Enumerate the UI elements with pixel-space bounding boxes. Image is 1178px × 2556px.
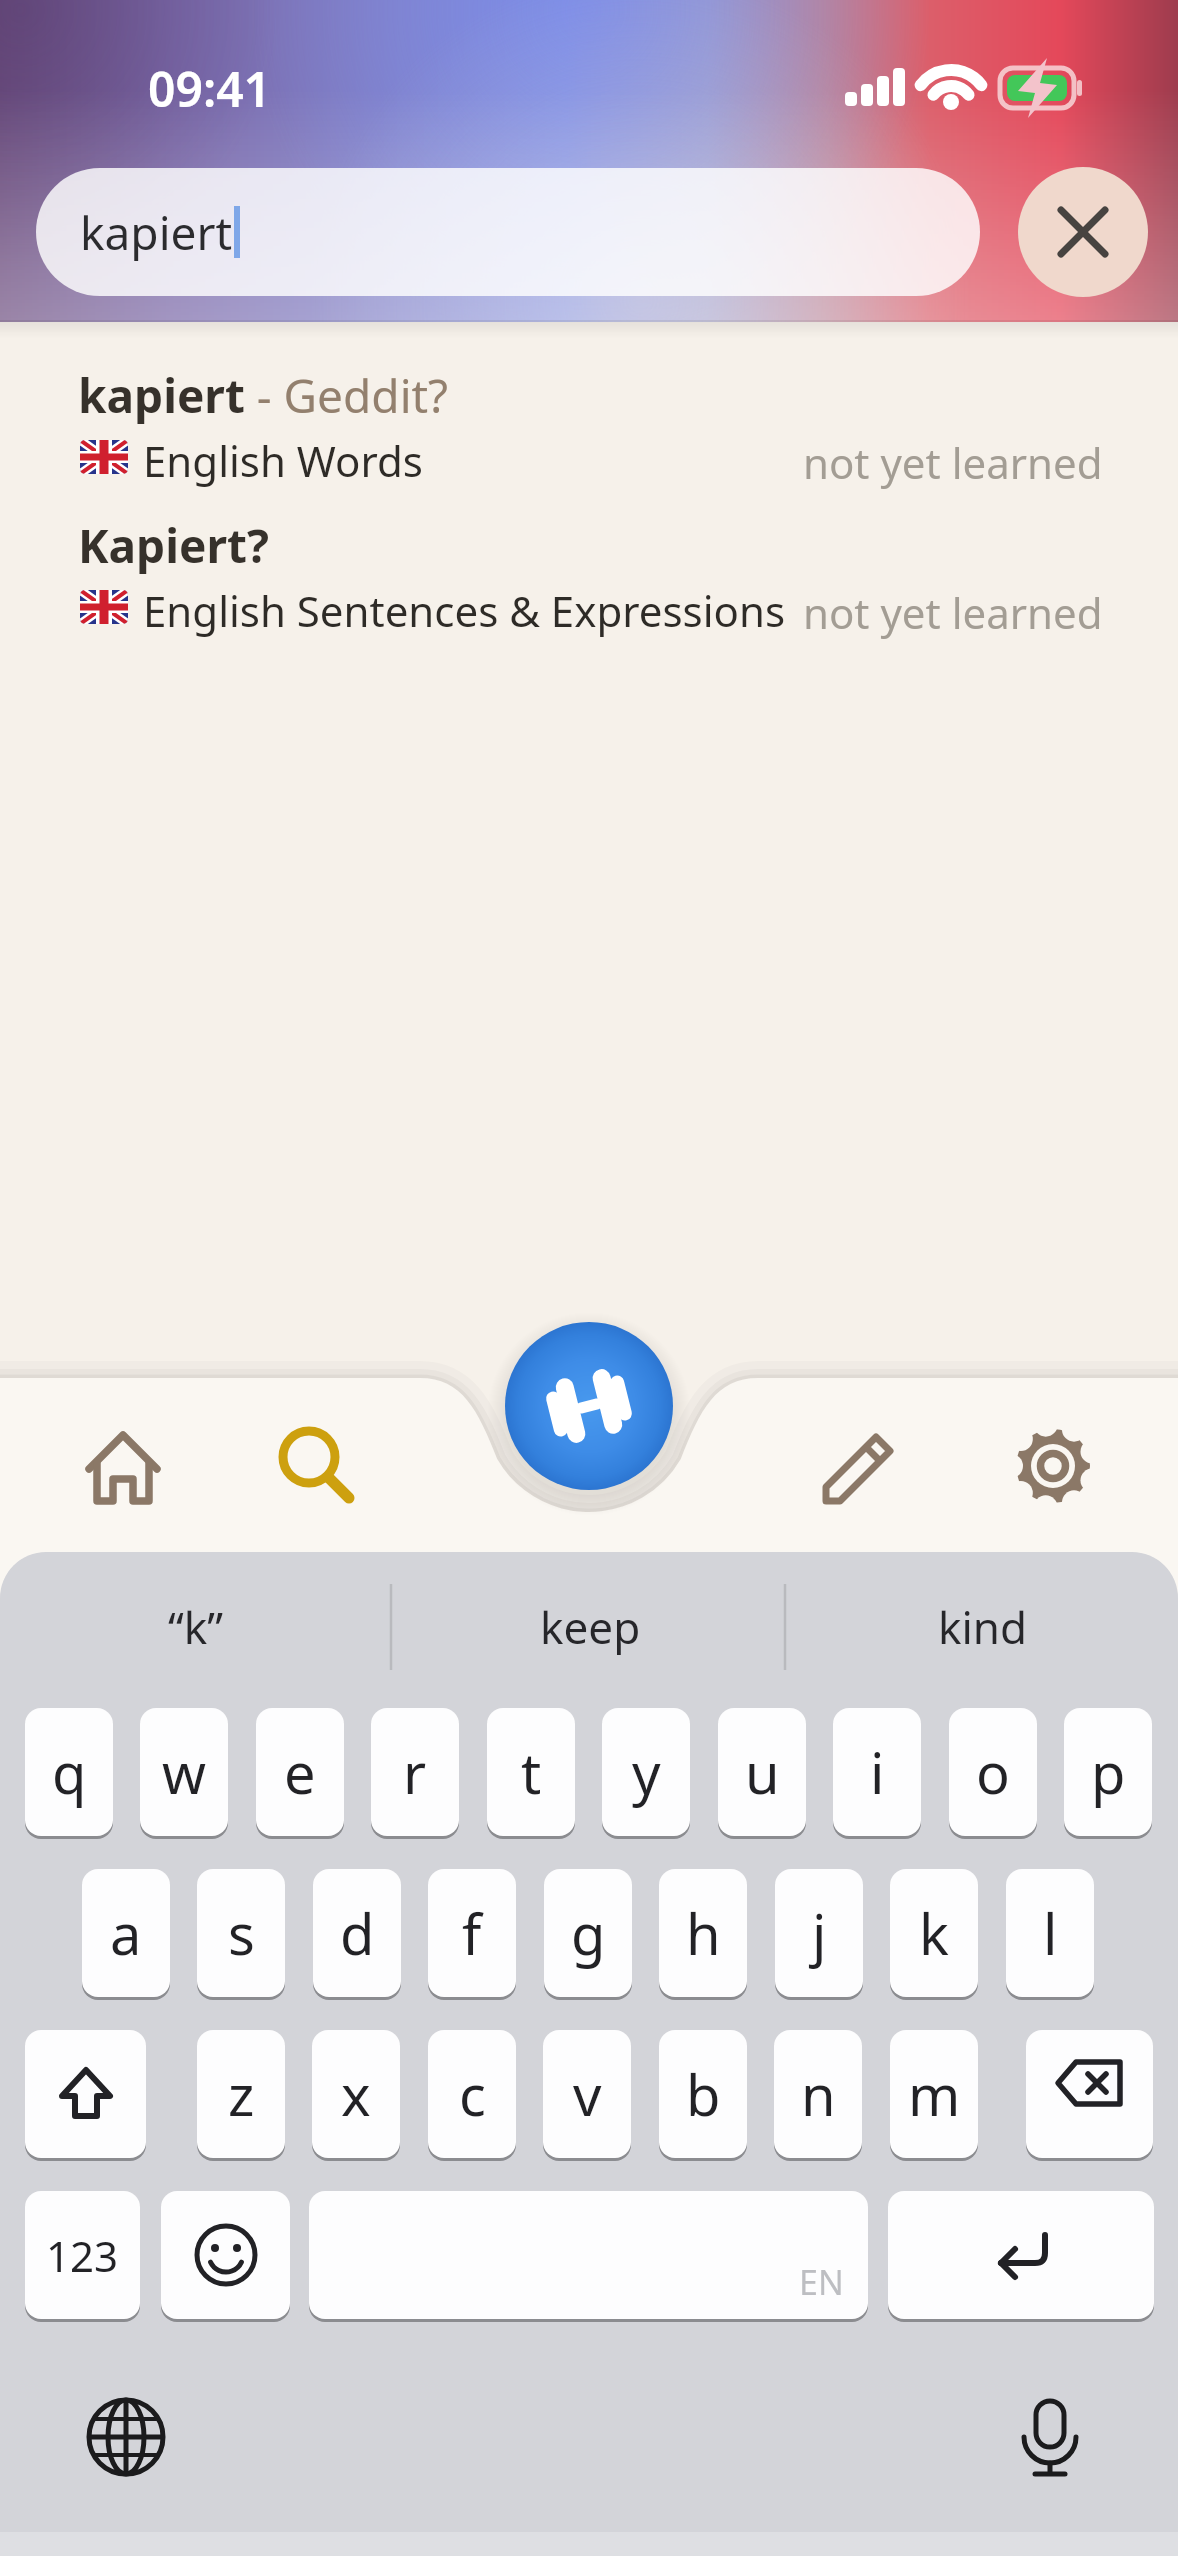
button[interactable]	[888, 2191, 1154, 2322]
staticText: Kapiert?	[78, 514, 269, 577]
button[interactable]: keep	[440, 1597, 740, 1657]
button[interactable]: “k”	[46, 1597, 346, 1657]
staticText: f	[462, 1895, 482, 1971]
staticText: w	[162, 1734, 207, 1810]
button[interactable]	[79, 1423, 167, 1511]
button[interactable]: p	[1064, 1708, 1152, 1839]
button[interactable]: g	[544, 1869, 632, 2000]
staticText: j	[812, 1895, 827, 1971]
staticText: kind	[938, 1597, 1028, 1657]
button[interactable]: s	[197, 1869, 285, 2000]
staticText: d	[340, 1895, 375, 1971]
staticText: m	[908, 2056, 961, 2132]
staticText: p	[1091, 1734, 1126, 1810]
button[interactable]: Kapiert?	[36, 504, 1142, 644]
staticText: s	[228, 1895, 255, 1971]
button[interactable]: i	[833, 1708, 921, 1839]
button[interactable]: l	[1006, 1869, 1094, 2000]
button[interactable]	[1018, 167, 1148, 297]
button[interactable]	[25, 2030, 146, 2161]
staticText: k	[919, 1895, 949, 1971]
staticText: o	[976, 1734, 1010, 1810]
staticText: English Sentences & Expressions	[143, 582, 786, 639]
button[interactable]: m	[890, 2030, 978, 2161]
button[interactable]: b	[659, 2030, 747, 2161]
button[interactable]	[86, 2397, 166, 2477]
staticText: English Words	[143, 432, 423, 489]
staticText: kapiert - Geddit?	[78, 364, 449, 427]
button[interactable]: u	[718, 1708, 806, 1839]
button[interactable]: z	[197, 2030, 285, 2161]
button[interactable]: n	[774, 2030, 862, 2161]
button[interactable]: q	[25, 1708, 113, 1839]
staticText: t	[521, 1734, 542, 1810]
staticText: 09:41	[148, 56, 272, 121]
button[interactable]: 123	[25, 2191, 140, 2322]
staticText: g	[571, 1895, 606, 1971]
button[interactable]: k	[890, 1869, 978, 2000]
button[interactable]	[1010, 2397, 1090, 2477]
staticText: z	[228, 2056, 255, 2132]
staticText: EN	[799, 2259, 844, 2305]
button[interactable]	[1026, 2030, 1153, 2161]
staticText: “k”	[168, 1597, 224, 1657]
staticText: not yet learned	[803, 584, 1103, 641]
staticText: i	[870, 1734, 885, 1810]
staticText: u	[745, 1734, 780, 1810]
staticText: y	[632, 1734, 661, 1810]
staticText: l	[1043, 1895, 1058, 1971]
staticText: x	[341, 2056, 371, 2132]
button[interactable]: d	[313, 1869, 401, 2000]
button[interactable]	[505, 1322, 673, 1490]
button[interactable]: x	[312, 2030, 400, 2161]
button[interactable]	[1009, 1422, 1097, 1510]
button[interactable]: v	[543, 2030, 631, 2161]
button[interactable]: w	[140, 1708, 228, 1839]
button[interactable]: c	[428, 2030, 516, 2161]
button[interactable]: e	[256, 1708, 344, 1839]
staticText: n	[801, 2056, 836, 2132]
staticText: b	[686, 2056, 721, 2132]
button[interactable]	[271, 1423, 359, 1511]
button[interactable]: EN	[309, 2191, 868, 2322]
button[interactable]: j	[775, 1869, 863, 2000]
button[interactable]	[161, 2191, 290, 2322]
staticText: a	[110, 1895, 142, 1971]
button[interactable]: h	[659, 1869, 747, 2000]
button[interactable]: a	[82, 1869, 170, 2000]
button[interactable]: t	[487, 1708, 575, 1839]
button[interactable]: y	[602, 1708, 690, 1839]
button[interactable]: kapiert - Geddit?	[36, 352, 1142, 492]
button[interactable]: f	[428, 1869, 516, 2000]
button[interactable]	[814, 1423, 902, 1511]
staticText: r	[403, 1734, 427, 1810]
staticText: c	[459, 2056, 486, 2132]
staticText: h	[686, 1895, 721, 1971]
staticText: v	[573, 2056, 602, 2132]
staticText: q	[52, 1734, 87, 1810]
button[interactable]: r	[371, 1708, 459, 1839]
button[interactable]: kind	[833, 1597, 1133, 1657]
staticText: e	[284, 1734, 316, 1810]
staticText: not yet learned	[803, 434, 1103, 491]
staticText: kapiert	[80, 201, 233, 264]
button[interactable]: kapiert	[36, 168, 980, 296]
button[interactable]: o	[949, 1708, 1037, 1839]
staticText: keep	[540, 1597, 641, 1657]
staticText: 123	[46, 2227, 119, 2284]
